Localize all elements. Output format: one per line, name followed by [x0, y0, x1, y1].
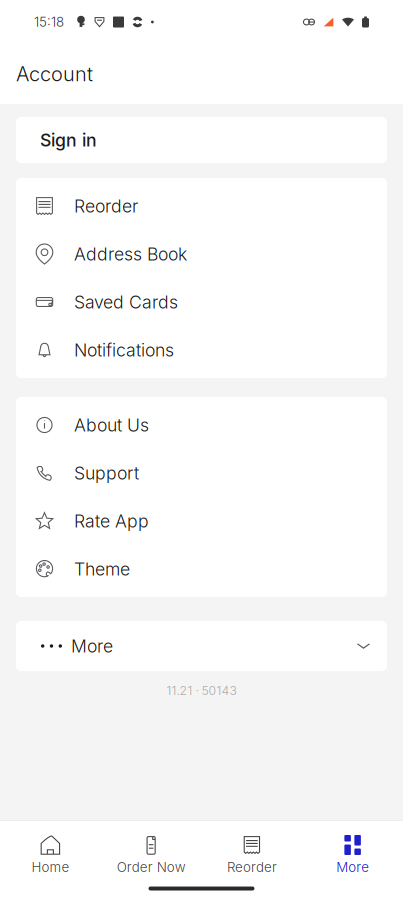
staticText: Home	[31, 859, 69, 875]
button[interactable]: More	[16, 621, 387, 671]
staticText: Sign in	[40, 129, 97, 151]
staticText: About Us	[74, 414, 149, 436]
button[interactable]: Theme	[16, 545, 387, 593]
staticText: Saved Cards	[74, 291, 178, 313]
staticText: 15:18	[34, 14, 64, 30]
staticText: Address Book	[74, 243, 187, 265]
staticText: Reorder	[227, 859, 277, 875]
staticText: Reorder	[74, 195, 138, 217]
staticText: Support	[74, 462, 139, 484]
button[interactable]: About Us	[16, 401, 387, 449]
button[interactable]: Support	[16, 449, 387, 497]
button[interactable]: Sign in	[16, 117, 387, 163]
button[interactable]: Home	[0, 821, 101, 877]
button[interactable]: Reorder	[16, 182, 387, 230]
button[interactable]: Address Book	[16, 230, 387, 278]
staticText: Rate App	[74, 510, 149, 532]
staticText: More	[336, 859, 369, 875]
staticText: More	[71, 635, 113, 657]
staticText: Notifications	[74, 339, 174, 361]
button[interactable]: Notifications	[16, 326, 387, 374]
button[interactable]: Saved Cards	[16, 278, 387, 326]
button[interactable]: More	[302, 821, 403, 877]
button[interactable]: Reorder	[201, 821, 302, 877]
staticText: 11.21 · 50143	[166, 683, 236, 698]
staticText: Account	[16, 62, 93, 86]
staticText: Theme	[74, 558, 130, 580]
button[interactable]: Rate App	[16, 497, 387, 545]
button[interactable]: Order Now	[101, 821, 202, 877]
staticText: Order Now	[117, 859, 186, 875]
